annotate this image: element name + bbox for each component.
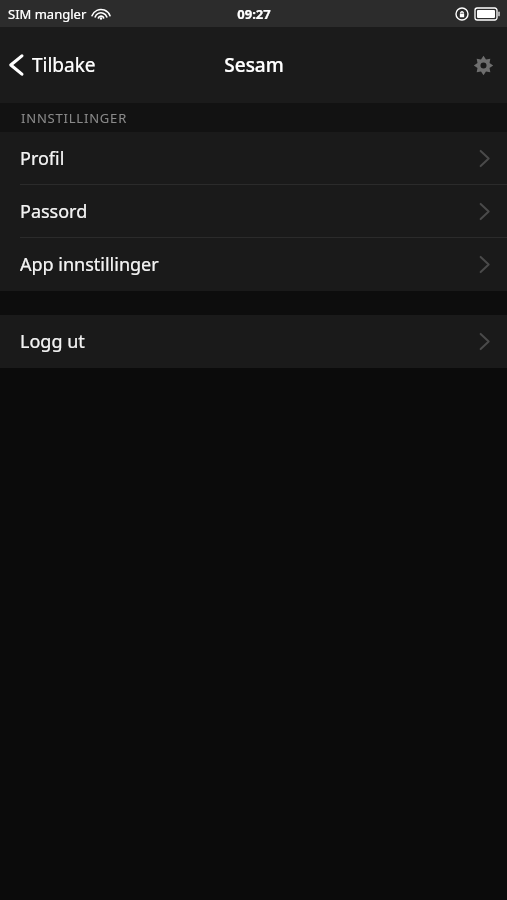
button[interactable]: Passord	[0, 185, 507, 238]
staticText: Sesam	[224, 52, 284, 78]
staticText: App innstillinger	[20, 252, 159, 277]
staticText: Tilbake	[32, 52, 96, 78]
staticText: Profil	[20, 146, 65, 171]
staticText: INNSTILLINGER	[21, 109, 128, 127]
button[interactable]: Profil	[0, 132, 507, 185]
staticText: SIM mangler	[8, 5, 87, 23]
staticText: Logg ut	[20, 329, 85, 354]
staticText: 09:27	[237, 5, 271, 23]
staticText: Passord	[20, 199, 88, 224]
button[interactable]: Settings	[460, 43, 507, 88]
button[interactable]: Tilbake	[0, 44, 108, 86]
button[interactable]: App innstillinger	[0, 238, 507, 291]
button[interactable]: Logg ut	[0, 315, 507, 368]
